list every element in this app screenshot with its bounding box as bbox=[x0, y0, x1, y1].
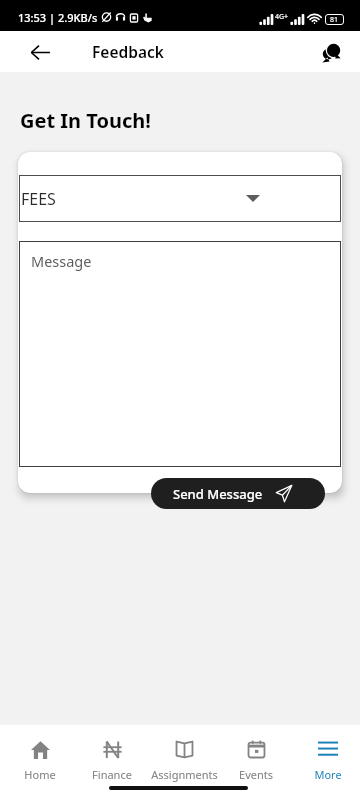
button[interactable]: FEES bbox=[19, 175, 341, 222]
button[interactable]: More bbox=[292, 730, 360, 782]
staticText: Assignments bbox=[151, 767, 218, 782]
staticText: Feedback bbox=[92, 41, 164, 62]
button[interactable]: Message bbox=[19, 241, 341, 467]
staticText: Get In Touch! bbox=[20, 107, 151, 134]
staticText: Finance bbox=[92, 767, 132, 782]
button[interactable]: Home bbox=[4, 730, 76, 782]
staticText: Events bbox=[239, 767, 273, 782]
staticText: 81 bbox=[330, 15, 339, 25]
button[interactable]: Finance bbox=[76, 730, 148, 782]
button[interactable]: Chat bbox=[312, 33, 350, 71]
staticText: More bbox=[314, 767, 342, 782]
button[interactable]: Assignments bbox=[148, 730, 220, 782]
staticText: Message bbox=[31, 251, 92, 271]
button[interactable]: Send Message bbox=[151, 478, 325, 509]
staticText: 13:53 | 2.9KB/s bbox=[18, 10, 98, 25]
staticText: FEES bbox=[21, 188, 56, 210]
button[interactable]: Back bbox=[20, 32, 60, 72]
button[interactable]: Events bbox=[220, 730, 292, 782]
staticText: 4G+ bbox=[275, 12, 289, 22]
staticText: Home bbox=[24, 767, 56, 782]
staticText: Send Message bbox=[173, 485, 263, 503]
